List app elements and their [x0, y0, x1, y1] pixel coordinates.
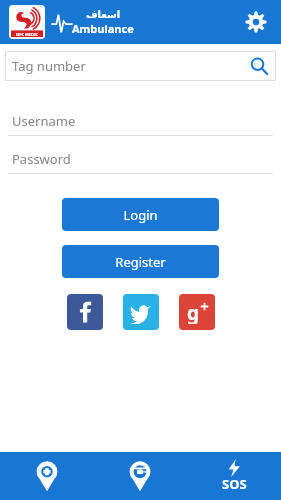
button[interactable]: Password [8, 150, 273, 174]
button[interactable]: Google Plus [179, 294, 215, 330]
staticText: اسعاف [86, 9, 121, 21]
staticText: SOS [222, 475, 247, 493]
button[interactable]: NFC Medic logo [9, 5, 45, 39]
button[interactable]: Register [62, 245, 219, 278]
button[interactable]: Air ambulance [93, 452, 187, 500]
button[interactable]: Twitter [123, 294, 159, 330]
button[interactable]: Tag number [5, 51, 276, 81]
button[interactable]: Login [62, 198, 219, 231]
staticText: NFC MEDIC [16, 32, 39, 37]
button[interactable]: Username [8, 112, 273, 136]
button[interactable]: Search [249, 56, 269, 76]
staticText: Password [12, 150, 71, 168]
staticText: Login [123, 206, 158, 224]
button[interactable]: SOS emergency [187, 452, 281, 500]
staticText: Ambulance [72, 21, 134, 36]
button[interactable]: Nearby hospitals [0, 452, 93, 500]
staticText: Username [12, 112, 76, 130]
button[interactable]: Facebook [67, 294, 103, 330]
button[interactable]: Settings [241, 7, 271, 37]
staticText: g [187, 300, 200, 324]
staticText: Register [115, 253, 166, 271]
staticText: Tag number [12, 57, 86, 75]
